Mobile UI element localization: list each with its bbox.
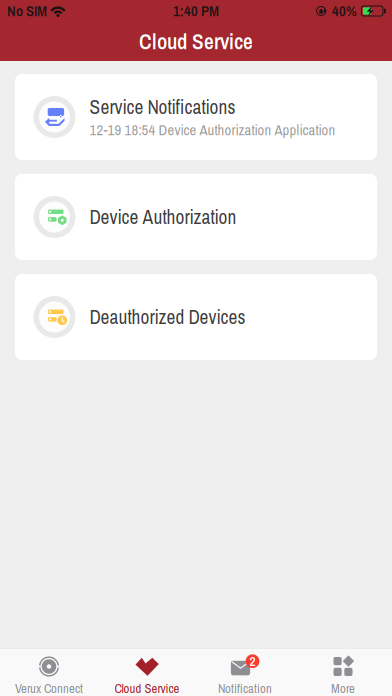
button[interactable]: 2 [196,648,294,696]
staticText: Service Notifications [89,94,235,120]
staticText: Verux Connect [15,680,83,696]
staticText: Deauthorized Devices [89,304,245,330]
staticText: More [331,680,355,696]
button[interactable]: Cloud Service [98,648,196,696]
staticText: Cloud Service [139,27,253,56]
staticText: 2 [249,652,255,670]
button[interactable]: Device Authorization [15,174,377,260]
button[interactable]: Deauthorized Devices [15,274,377,360]
staticText: Cloud Service [114,680,179,696]
button[interactable]: Verux Connect [0,648,98,696]
staticText: Notification [218,680,272,696]
button[interactable]: More [294,648,392,696]
staticText: No SIM [7,1,47,21]
staticText: 12-19 18:54 Device Authorization Applica… [89,120,335,140]
staticText: 1:40 PM [173,1,219,21]
staticText: Device Authorization [89,204,236,230]
button[interactable]: Service Notifications [15,74,377,160]
staticText: 40% [332,1,357,21]
